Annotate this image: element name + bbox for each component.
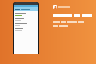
button[interactable] — [14, 22, 38, 27]
button[interactable]: App bar — [14, 7, 38, 11]
button[interactable]: Customer Center logo — [53, 5, 70, 9]
button[interactable] — [14, 27, 38, 32]
button[interactable] — [14, 17, 38, 22]
button[interactable] — [14, 12, 38, 17]
